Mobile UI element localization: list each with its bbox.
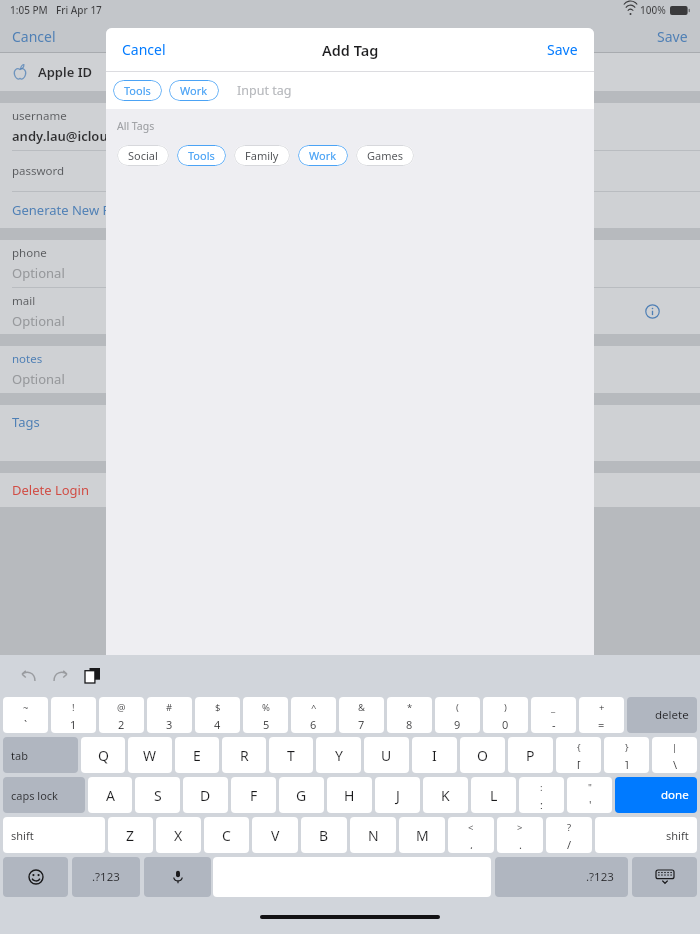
button[interactable]: $	[195, 697, 240, 733]
button[interactable]: Generate New Passw	[0, 192, 700, 228]
staticText: password	[12, 163, 65, 179]
staticText: H	[344, 786, 355, 805]
staticText: T	[287, 746, 295, 765]
button[interactable]: L	[471, 777, 516, 813]
staticText: ]	[625, 757, 629, 769]
button[interactable]: Emoji	[3, 857, 68, 897]
button[interactable]: Family	[234, 145, 290, 166]
button[interactable]: shift	[3, 817, 105, 853]
staticText: M	[416, 826, 429, 845]
button[interactable]: X	[156, 817, 201, 853]
button[interactable]: Delete Login	[0, 473, 700, 507]
staticText: G	[296, 786, 307, 805]
staticText: 3	[166, 717, 173, 729]
staticText: Tags	[12, 413, 40, 431]
button[interactable]: @	[99, 697, 144, 733]
button[interactable]: C	[204, 817, 249, 853]
button[interactable]: ^	[291, 697, 336, 733]
button[interactable]: >	[497, 817, 543, 853]
button[interactable]: Cancel	[122, 40, 166, 59]
button[interactable]: &	[339, 697, 384, 733]
button[interactable]: E	[175, 737, 219, 773]
button[interactable]: P	[508, 737, 553, 773]
button[interactable]: .?123	[495, 857, 628, 897]
button[interactable]: T	[269, 737, 313, 773]
button[interactable]: R	[222, 737, 266, 773]
button[interactable]: Undo	[14, 661, 42, 689]
button[interactable]: .?123	[72, 857, 140, 897]
button[interactable]: B	[301, 817, 347, 853]
staticText: A	[106, 786, 115, 805]
button[interactable]: !	[51, 697, 96, 733]
button[interactable]: M	[399, 817, 445, 853]
button[interactable]: done	[615, 777, 697, 813]
button[interactable]: <	[448, 817, 494, 853]
staticText: |	[672, 741, 678, 754]
button[interactable]: J	[375, 777, 420, 813]
button[interactable]: %	[243, 697, 288, 733]
staticText: Work	[309, 148, 337, 163]
button[interactable]: Tools	[113, 80, 162, 101]
staticText: .?123	[92, 869, 120, 885]
button[interactable]: Hide keyboard	[632, 857, 697, 897]
button[interactable]: #	[147, 697, 192, 733]
staticText: $	[215, 701, 221, 714]
button[interactable]: H	[327, 777, 372, 813]
button[interactable]: (	[435, 697, 480, 733]
staticText: Apple ID	[38, 63, 93, 81]
button[interactable]: Paste	[78, 661, 106, 689]
button[interactable]: W	[128, 737, 172, 773]
button[interactable]: Z	[108, 817, 153, 853]
button[interactable]: Save	[657, 27, 688, 46]
button[interactable]: }	[604, 737, 649, 773]
button[interactable]: U	[364, 737, 409, 773]
button[interactable]: shift	[595, 817, 697, 853]
button[interactable]: Cancel	[12, 27, 56, 46]
button[interactable]: Work	[298, 145, 348, 166]
staticText: All Tags	[117, 119, 155, 133]
button[interactable]: N	[350, 817, 396, 853]
staticText: N	[368, 826, 379, 845]
button[interactable]: caps lock	[3, 777, 85, 813]
button[interactable]: tab	[3, 737, 78, 773]
button[interactable]: Y	[316, 737, 361, 773]
button[interactable]: S	[135, 777, 180, 813]
button[interactable]: ?	[546, 817, 592, 853]
button[interactable]: ~	[3, 697, 48, 733]
staticText: ~	[23, 701, 29, 714]
staticText: 5	[263, 717, 270, 729]
button[interactable]: I	[412, 737, 457, 773]
button[interactable]: Redo	[46, 661, 74, 689]
button[interactable]: Save	[547, 40, 578, 59]
button[interactable]: Work	[169, 80, 219, 101]
staticText: J	[396, 786, 400, 805]
staticText: Input tag	[237, 82, 292, 99]
button[interactable]: D	[183, 777, 228, 813]
button[interactable]: A	[88, 777, 132, 813]
button[interactable]: Tags	[0, 405, 700, 439]
button[interactable]: delete	[627, 697, 697, 733]
button[interactable]: G	[279, 777, 324, 813]
button[interactable]: F	[231, 777, 276, 813]
button[interactable]: |	[652, 737, 697, 773]
button[interactable]: +	[579, 697, 624, 733]
button[interactable]: Social	[117, 145, 169, 166]
staticText: U	[381, 746, 392, 765]
staticText: _	[551, 701, 556, 714]
button[interactable]: Games	[356, 145, 414, 166]
button[interactable]: *	[387, 697, 432, 733]
staticText: ^	[311, 701, 317, 714]
button[interactable]: O	[460, 737, 505, 773]
button[interactable]: :	[519, 777, 564, 813]
button[interactable]: )	[483, 697, 528, 733]
button[interactable]: _	[531, 697, 576, 733]
staticText: notes	[12, 351, 43, 367]
button[interactable]: Q	[81, 737, 125, 773]
button[interactable]: V	[252, 817, 298, 853]
button[interactable]: Dictation	[144, 857, 211, 897]
button[interactable]: "	[567, 777, 612, 813]
button[interactable]: K	[423, 777, 468, 813]
button[interactable]: {	[556, 737, 601, 773]
button[interactable]: Tools	[177, 145, 226, 166]
